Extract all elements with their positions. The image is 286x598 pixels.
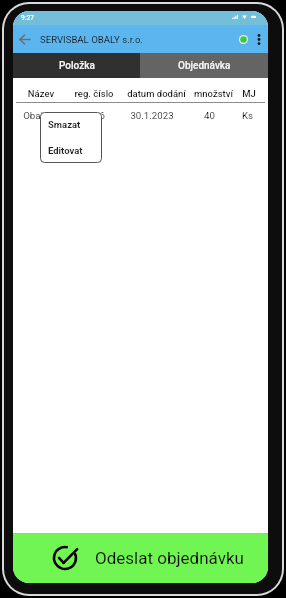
staticText: Objednávka xyxy=(178,60,231,72)
button[interactable]: Položka xyxy=(13,53,140,78)
button[interactable]: Connection status xyxy=(237,26,250,52)
staticText: Ks xyxy=(233,110,262,121)
button[interactable]: More options xyxy=(250,26,267,52)
staticText: Položka xyxy=(59,60,95,72)
staticText: Smazat xyxy=(48,119,81,130)
staticText: MJ xyxy=(234,88,264,99)
staticText: 30.1.2023 xyxy=(118,110,186,121)
staticText: reg. číslo xyxy=(69,88,119,99)
staticText: 40 xyxy=(186,110,233,121)
button[interactable]: Obal xyxy=(13,103,268,124)
button[interactable]: Editovat xyxy=(40,137,102,163)
button[interactable]: Smazat xyxy=(40,112,102,137)
staticText: datum dodání xyxy=(119,88,194,99)
staticText: 9:27 xyxy=(21,14,34,22)
staticText: Obal xyxy=(23,110,43,121)
staticText: Editovat xyxy=(48,145,83,156)
button[interactable]: Back xyxy=(15,26,35,52)
staticText: Název xyxy=(13,88,69,99)
staticText: Odeslat objednávku xyxy=(95,548,244,568)
button[interactable]: Odeslat objednávku xyxy=(13,533,268,583)
staticText: 123456 xyxy=(13,110,105,121)
staticText: SERVISBAL OBALY s.r.o. xyxy=(40,34,143,45)
staticText: množství xyxy=(191,88,236,99)
button[interactable]: Objednávka xyxy=(140,53,268,78)
